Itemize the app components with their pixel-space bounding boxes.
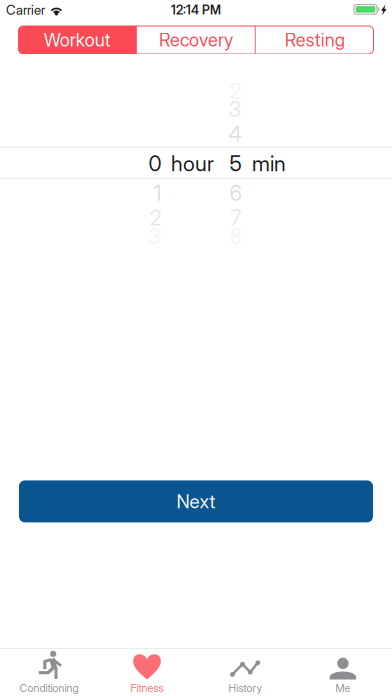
- staticText: min: [252, 151, 286, 176]
- button[interactable]: Next: [19, 480, 373, 522]
- button[interactable]: Recovery: [137, 26, 255, 54]
- staticText: 0: [148, 151, 161, 176]
- button[interactable]: Workout: [18, 26, 136, 54]
- button[interactable]: Conditioning: [0, 649, 98, 696]
- staticText: 4: [228, 121, 241, 147]
- staticText: 2: [149, 205, 161, 231]
- staticText: 3: [148, 223, 161, 249]
- staticText: hour: [171, 151, 214, 176]
- staticText: History: [228, 681, 261, 694]
- button[interactable]: History: [196, 649, 294, 696]
- staticText: 3: [228, 96, 241, 122]
- button[interactable]: Resting: [256, 26, 373, 54]
- staticText: Workout: [44, 29, 111, 51]
- staticText: Carrier: [6, 2, 45, 18]
- staticText: Resting: [285, 29, 345, 51]
- button[interactable]: Fitness: [98, 649, 196, 696]
- staticText: 12:14 PM: [171, 2, 221, 17]
- staticText: 5: [229, 151, 241, 176]
- staticText: 8: [229, 223, 241, 249]
- staticText: 6: [229, 180, 241, 206]
- staticText: 7: [230, 205, 241, 231]
- staticText: Next: [176, 490, 215, 513]
- staticText: Fitness: [130, 681, 163, 694]
- staticText: 1: [153, 180, 161, 206]
- staticText: Me: [335, 681, 350, 694]
- staticText: 2: [229, 78, 241, 104]
- staticText: Conditioning: [19, 681, 78, 694]
- button[interactable]: Me: [294, 649, 392, 696]
- staticText: Recovery: [159, 29, 233, 51]
